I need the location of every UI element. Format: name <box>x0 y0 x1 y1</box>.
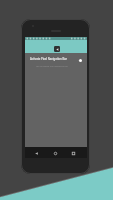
button[interactable]: Back <box>34 151 39 156</box>
button[interactable]: Recents <box>71 151 76 156</box>
button[interactable]: Home <box>53 151 58 156</box>
button[interactable]: Activate Pixel Navigation Bar <box>30 53 82 65</box>
staticText: Tap to enable the navigation bar <box>36 65 68 68</box>
staticText: Activate Pixel Navigation Bar <box>30 57 67 61</box>
button[interactable]: App icon <box>54 46 60 52</box>
